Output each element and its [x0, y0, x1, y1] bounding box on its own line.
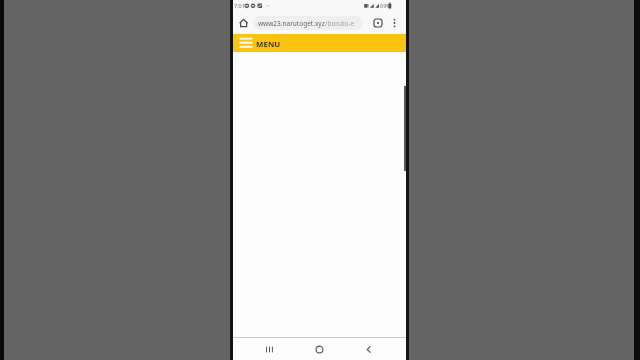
button[interactable]: [262, 342, 277, 357]
button[interactable]: [361, 342, 376, 357]
staticText: www23.narutoget.xyz: [258, 19, 325, 28]
staticText: 69%: [380, 2, 391, 9]
button[interactable]: www23.narutoget.xyz: [233, 12, 406, 34]
button[interactable]: [312, 342, 327, 357]
button[interactable]: [371, 16, 385, 30]
button[interactable]: [237, 17, 250, 30]
staticText: MENU: [256, 39, 281, 50]
button[interactable]: [389, 16, 400, 30]
button[interactable]: MENU: [233, 34, 406, 52]
staticText: 7:01: [234, 2, 245, 9]
staticText: /boruto-e: [325, 19, 355, 28]
button[interactable]: www23.narutoget.xyz: [253, 16, 363, 30]
